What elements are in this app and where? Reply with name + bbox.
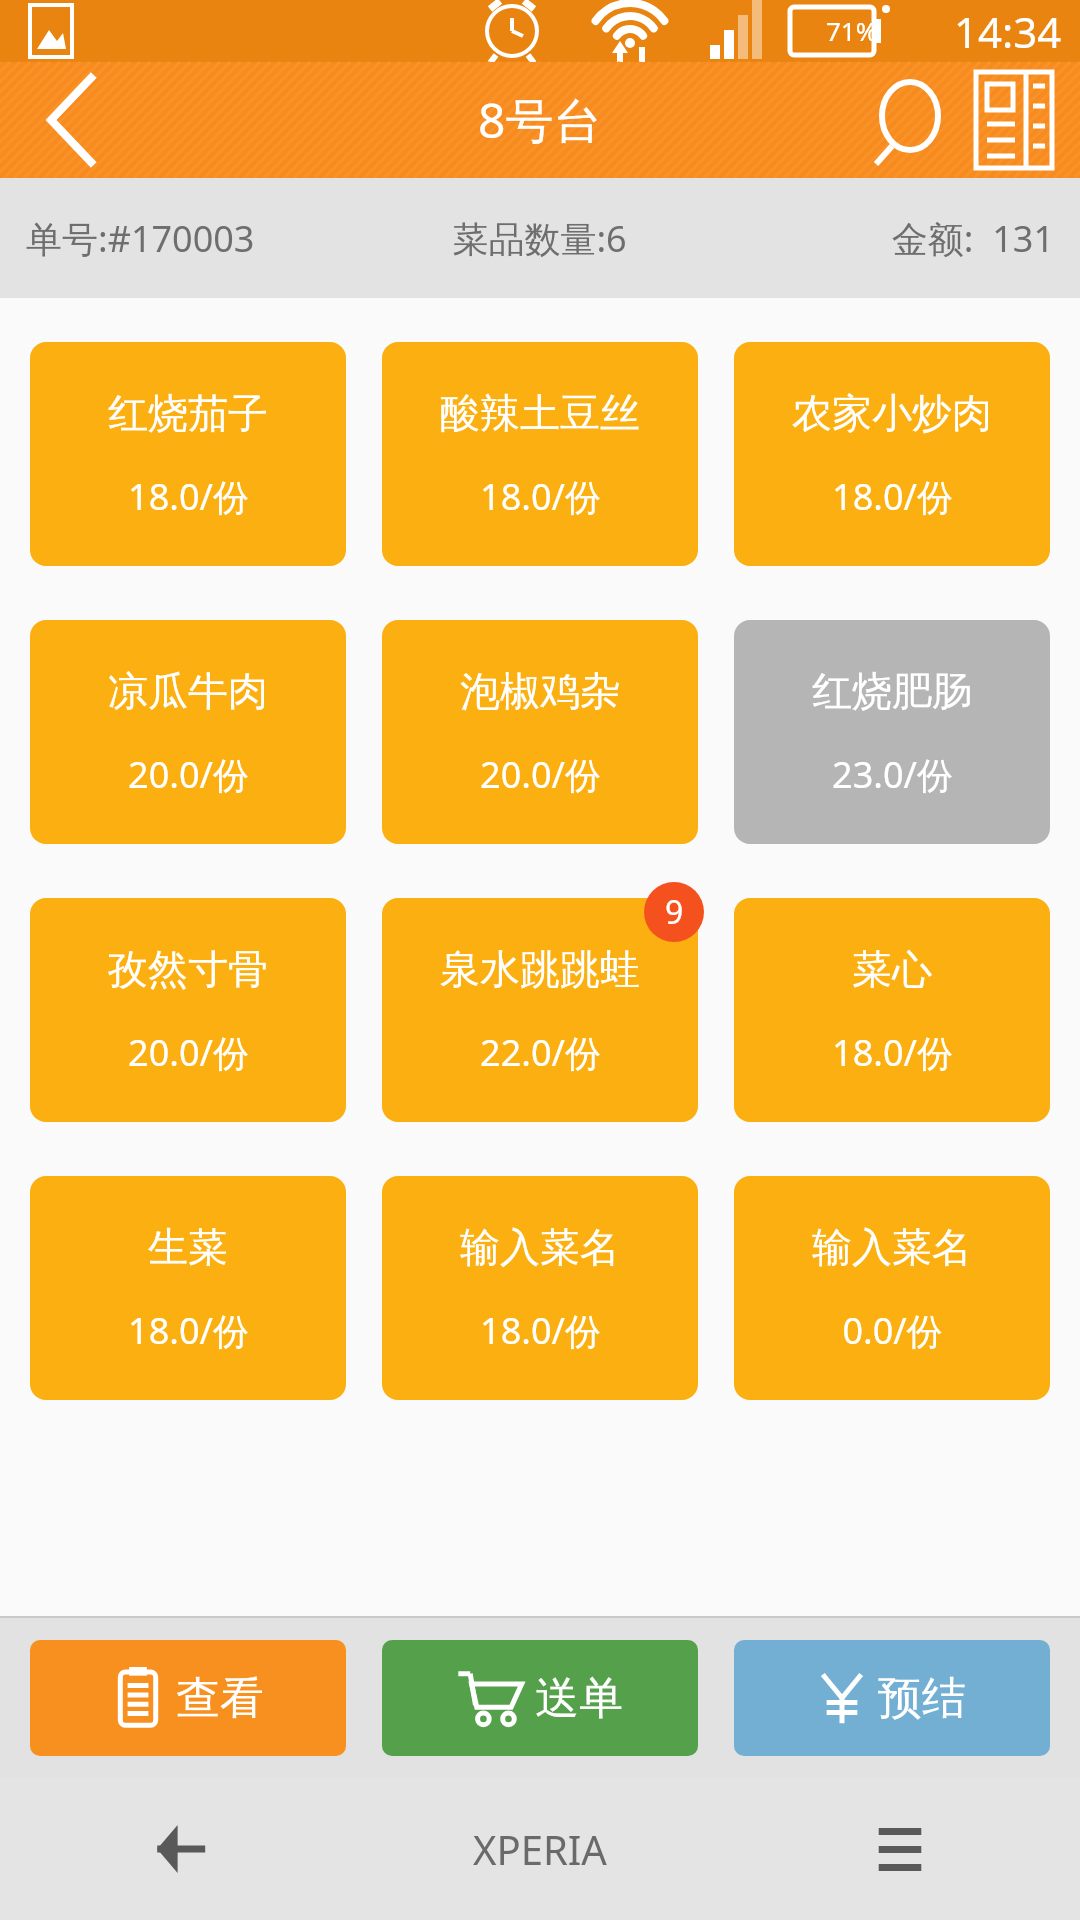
button[interactable]: 查看 bbox=[30, 1640, 346, 1756]
staticText: 单号:#170003 bbox=[26, 214, 368, 263]
staticText: 20.0/份 bbox=[128, 750, 249, 799]
button[interactable]: Back bbox=[0, 62, 130, 178]
staticText: 18.0/份 bbox=[480, 1306, 601, 1355]
button[interactable]: Back bbox=[0, 1778, 360, 1920]
staticText: 18.0/份 bbox=[832, 1028, 953, 1077]
button[interactable]: Order list bbox=[962, 62, 1066, 178]
staticText: 预结 bbox=[878, 1671, 966, 1726]
staticText: 9 bbox=[665, 890, 684, 934]
staticText: 泉水跳跳蛙 bbox=[440, 944, 640, 994]
staticText: 泡椒鸡杂 bbox=[460, 666, 620, 716]
staticText: XPERIA bbox=[473, 1822, 607, 1876]
button[interactable]: 凉瓜牛肉 bbox=[30, 620, 346, 844]
staticText: 输入菜名 bbox=[812, 1222, 972, 1272]
staticText: 71% bbox=[826, 13, 878, 48]
button[interactable]: 生菜 bbox=[30, 1176, 346, 1400]
button[interactable]: Recent apps bbox=[720, 1778, 1080, 1920]
staticText: 14:34 bbox=[954, 3, 1062, 60]
staticText: 孜然寸骨 bbox=[108, 944, 268, 994]
staticText: 菜心 bbox=[852, 944, 932, 994]
button[interactable]: 孜然寸骨 bbox=[30, 898, 346, 1122]
button[interactable]: 输入菜名 bbox=[382, 1176, 698, 1400]
staticText: 18.0/份 bbox=[832, 472, 953, 521]
staticText: 18.0/份 bbox=[128, 472, 249, 521]
staticText: 23.0/份 bbox=[832, 750, 953, 799]
staticText: 金额: 131 bbox=[711, 214, 1054, 263]
staticText: 查看 bbox=[176, 1671, 264, 1726]
staticText: 18.0/份 bbox=[128, 1306, 249, 1355]
staticText: 18.0/份 bbox=[480, 472, 601, 521]
staticText: 生菜 bbox=[148, 1222, 228, 1272]
staticText: 8号台 bbox=[478, 87, 602, 153]
button[interactable]: 预结 bbox=[734, 1640, 1050, 1756]
staticText: 酸辣土豆丝 bbox=[440, 388, 640, 438]
staticText: 凉瓜牛肉 bbox=[108, 666, 268, 716]
button[interactable]: 酸辣土豆丝 bbox=[382, 342, 698, 566]
staticText: 20.0/份 bbox=[480, 750, 601, 799]
staticText: 农家小炒肉 bbox=[792, 388, 992, 438]
staticText: 红烧茄子 bbox=[108, 388, 268, 438]
staticText: 22.0/份 bbox=[480, 1028, 601, 1077]
staticText: 送单 bbox=[535, 1671, 623, 1726]
staticText: 20.0/份 bbox=[128, 1028, 249, 1077]
button[interactable]: Search bbox=[858, 62, 962, 178]
button[interactable]: 送单 bbox=[382, 1640, 698, 1756]
button[interactable]: 菜心 bbox=[734, 898, 1050, 1122]
staticText: 输入菜名 bbox=[460, 1222, 620, 1272]
staticText: 0.0/份 bbox=[842, 1306, 943, 1355]
staticText: 菜品数量:6 bbox=[368, 214, 711, 263]
button[interactable]: 泡椒鸡杂 bbox=[382, 620, 698, 844]
button[interactable]: 泉水跳跳蛙 bbox=[382, 898, 698, 1122]
button[interactable]: 红烧茄子 bbox=[30, 342, 346, 566]
button[interactable]: 输入菜名 bbox=[734, 1176, 1050, 1400]
button[interactable]: 红烧肥肠 bbox=[734, 620, 1050, 844]
staticText: 红烧肥肠 bbox=[812, 666, 972, 716]
button[interactable]: 农家小炒肉 bbox=[734, 342, 1050, 566]
